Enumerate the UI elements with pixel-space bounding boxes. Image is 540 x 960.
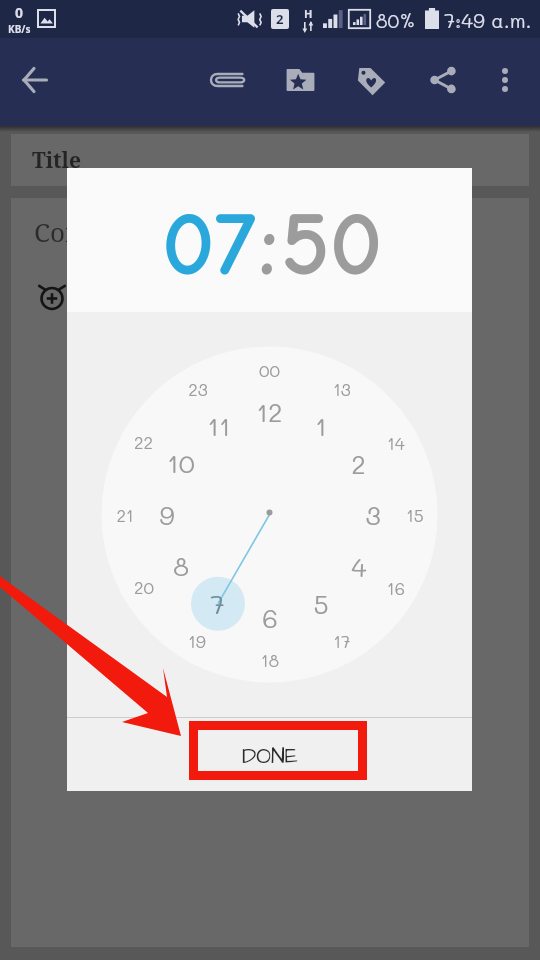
staticText: 20	[134, 576, 154, 598]
staticText: 07	[162, 191, 257, 297]
staticText: 6	[262, 601, 278, 635]
staticText: 7:49 a.m.	[444, 7, 532, 33]
staticText: 2	[351, 447, 366, 481]
staticText: 22	[134, 431, 153, 453]
button[interactable]: More options	[478, 53, 532, 107]
button[interactable]: Tag	[343, 53, 397, 107]
staticText: 00	[259, 359, 280, 381]
button[interactable]: Attach	[201, 53, 255, 107]
staticText: 15	[406, 504, 424, 526]
staticText: DONE	[242, 741, 298, 772]
staticText: 18	[261, 649, 279, 671]
staticText: Title	[32, 146, 82, 175]
button[interactable]: Share	[416, 53, 470, 107]
staticText: 12	[256, 395, 283, 429]
staticText: 1	[315, 409, 327, 443]
staticText: 23	[188, 378, 208, 400]
button[interactable]: DONE	[200, 729, 340, 784]
staticText: 13	[333, 378, 351, 400]
staticText: 8	[173, 549, 189, 583]
staticText: 5	[313, 587, 329, 621]
staticText: :	[259, 191, 279, 297]
staticText: 11	[207, 409, 231, 443]
staticText: 19	[188, 630, 206, 652]
staticText: 0	[15, 3, 24, 22]
staticText: 2	[276, 10, 284, 28]
staticText: 16	[387, 577, 405, 599]
staticText: 80%	[376, 8, 416, 33]
staticText: 50	[281, 191, 383, 297]
staticText: 21	[116, 504, 134, 526]
staticText: 17	[333, 630, 351, 652]
staticText: 3	[365, 498, 381, 532]
staticText: 10	[167, 446, 195, 480]
staticText: KB/s	[8, 22, 31, 36]
staticText: Content	[34, 214, 131, 249]
staticText: 7	[210, 587, 225, 621]
staticText: 4	[351, 550, 367, 584]
button[interactable]: Back	[8, 53, 62, 107]
staticText: H	[304, 6, 313, 21]
button[interactable]: Folder	[273, 53, 327, 107]
staticText: 9	[159, 498, 175, 532]
staticText: 14	[387, 432, 405, 454]
